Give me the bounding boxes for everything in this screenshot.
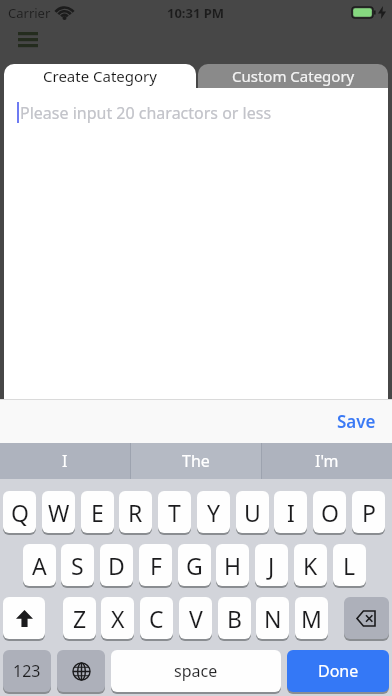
staticText: H — [224, 550, 242, 581]
button[interactable]: B — [218, 597, 251, 639]
staticText: Q — [11, 497, 29, 528]
button[interactable]: X — [101, 597, 134, 639]
staticText: I'm — [315, 450, 339, 472]
staticText: space — [174, 660, 218, 682]
staticText: L — [343, 550, 356, 581]
staticText: I — [287, 497, 295, 528]
button[interactable] — [57, 650, 105, 692]
button[interactable]: space — [111, 650, 281, 692]
button[interactable]: C — [140, 597, 173, 639]
button[interactable]: E — [81, 491, 114, 533]
button[interactable]: Custom Category — [198, 64, 388, 88]
staticText: 123 — [13, 660, 41, 682]
button[interactable]: Q — [3, 491, 36, 533]
button[interactable]: H — [216, 544, 249, 586]
staticText: J — [268, 550, 275, 581]
staticText: Done — [318, 660, 359, 682]
staticText: R — [128, 497, 143, 528]
button[interactable] — [18, 32, 38, 47]
button[interactable]: W — [42, 491, 75, 533]
staticText: U — [244, 497, 261, 528]
button[interactable]: V — [179, 597, 212, 639]
staticText: M — [301, 603, 322, 634]
button[interactable]: P — [352, 491, 385, 533]
staticText: W — [48, 497, 70, 528]
button[interactable]: S — [61, 544, 94, 586]
button[interactable]: U — [236, 491, 269, 533]
staticText: Save — [337, 410, 376, 433]
staticText: 10:31 PM — [167, 4, 225, 22]
staticText: Z — [73, 603, 87, 634]
staticText: N — [264, 603, 282, 634]
staticText: G — [186, 550, 203, 581]
staticText: P — [362, 497, 376, 528]
staticText: T — [168, 497, 181, 528]
button[interactable]: O — [313, 491, 346, 533]
staticText: Please input 20 charactors or less — [20, 102, 272, 124]
staticText: Custom Category — [232, 66, 355, 86]
button[interactable]: J — [255, 544, 288, 586]
staticText: The — [182, 450, 210, 472]
staticText: A — [32, 550, 47, 581]
button[interactable]: K — [294, 544, 327, 586]
button[interactable]: N — [256, 597, 289, 639]
staticText: D — [108, 550, 125, 581]
button[interactable]: Create Category — [4, 64, 196, 88]
button[interactable]: T — [158, 491, 191, 533]
button[interactable]: Y — [197, 491, 230, 533]
button[interactable]: G — [178, 544, 211, 586]
staticText: O — [321, 497, 339, 528]
button[interactable]: Done — [287, 650, 389, 692]
button[interactable]: The — [131, 443, 261, 479]
button[interactable]: Z — [63, 597, 96, 639]
button[interactable]: A — [23, 544, 56, 586]
staticText: S — [71, 550, 84, 581]
staticText: B — [227, 603, 242, 634]
button[interactable]: M — [295, 597, 328, 639]
staticText: V — [189, 603, 203, 634]
staticText: F — [150, 550, 162, 581]
button[interactable]: 123 — [3, 650, 51, 692]
staticText: Y — [207, 497, 221, 528]
staticText: Create Category — [43, 66, 157, 86]
staticText: C — [149, 603, 164, 634]
staticText: X — [111, 603, 125, 634]
staticText: I — [62, 450, 68, 472]
button[interactable] — [3, 597, 45, 639]
button[interactable]: I'm — [262, 443, 392, 479]
button[interactable]: I — [0, 443, 130, 479]
button[interactable]: D — [100, 544, 133, 586]
button[interactable]: Save — [337, 410, 376, 433]
staticText: Carrier — [8, 4, 51, 22]
button[interactable]: R — [119, 491, 152, 533]
staticText: K — [303, 550, 318, 581]
button[interactable]: L — [333, 544, 366, 586]
button[interactable]: F — [139, 544, 172, 586]
button[interactable]: I — [274, 491, 307, 533]
button[interactable] — [344, 597, 389, 639]
staticText: E — [91, 497, 104, 528]
